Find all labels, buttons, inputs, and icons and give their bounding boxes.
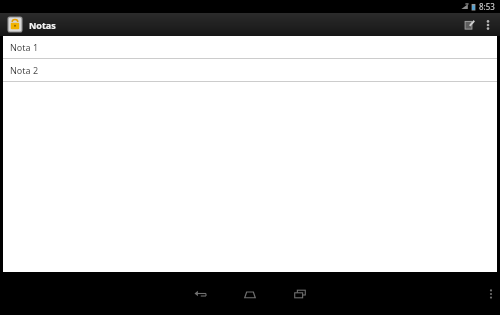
- button[interactable]: Nota 1: [3, 36, 497, 59]
- staticText: 8:53: [479, 1, 495, 12]
- button[interactable]: More options: [480, 13, 496, 36]
- button[interactable]: Menu: [482, 279, 500, 309]
- button[interactable]: Nota 2: [3, 59, 497, 82]
- button[interactable]: Back: [175, 279, 225, 309]
- button[interactable]: Home: [225, 279, 275, 309]
- button[interactable]: New note: [458, 13, 480, 36]
- staticText: Notas: [29, 19, 56, 31]
- staticText: Nota 2: [10, 64, 39, 76]
- staticText: Nota 1: [10, 41, 39, 53]
- button[interactable]: Recent apps: [275, 279, 325, 309]
